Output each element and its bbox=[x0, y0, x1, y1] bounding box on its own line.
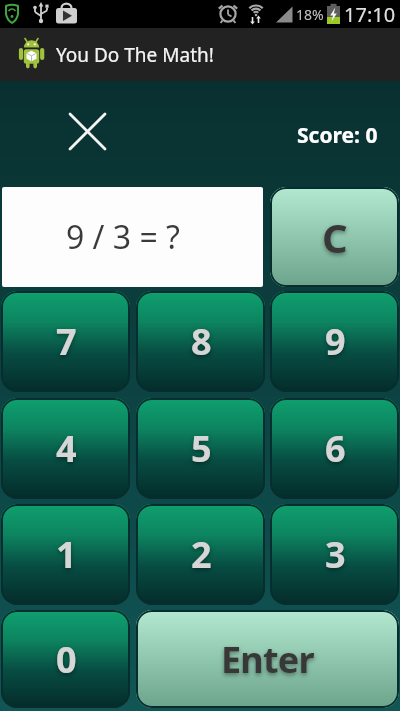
staticText: Enter bbox=[221, 635, 314, 684]
staticText: 1 bbox=[56, 530, 76, 579]
staticText: 7 bbox=[56, 317, 76, 366]
staticText: 8 bbox=[191, 317, 211, 366]
button[interactable]: 0 bbox=[1, 610, 130, 708]
button[interactable]: 8 bbox=[136, 291, 265, 392]
button[interactable]: 3 bbox=[270, 504, 399, 605]
button[interactable]: 5 bbox=[136, 398, 265, 499]
button[interactable]: 7 bbox=[1, 291, 130, 392]
staticText: 17:10 bbox=[344, 1, 396, 28]
staticText: 6 bbox=[325, 424, 345, 473]
staticText: 3 bbox=[325, 530, 345, 579]
staticText: C bbox=[322, 210, 347, 264]
button[interactable] bbox=[62, 106, 113, 157]
staticText: 2 bbox=[191, 530, 211, 579]
staticText: 5 bbox=[191, 424, 211, 473]
button[interactable]: 1 bbox=[1, 504, 130, 605]
staticText: 9 bbox=[325, 317, 345, 366]
staticText: You Do The Math! bbox=[56, 42, 214, 68]
staticText: 9 / 3 = ? bbox=[66, 215, 180, 259]
button[interactable]: 2 bbox=[136, 504, 265, 605]
staticText: 18% bbox=[296, 5, 324, 24]
staticText: 0 bbox=[56, 635, 76, 684]
button[interactable]: 9 bbox=[270, 291, 399, 392]
button[interactable]: Enter bbox=[136, 610, 399, 708]
staticText: 4 bbox=[56, 424, 76, 473]
button[interactable]: 4 bbox=[1, 398, 130, 499]
button[interactable]: C bbox=[270, 187, 399, 287]
staticText: Score: 0 bbox=[297, 121, 378, 150]
button[interactable]: 6 bbox=[270, 398, 399, 499]
